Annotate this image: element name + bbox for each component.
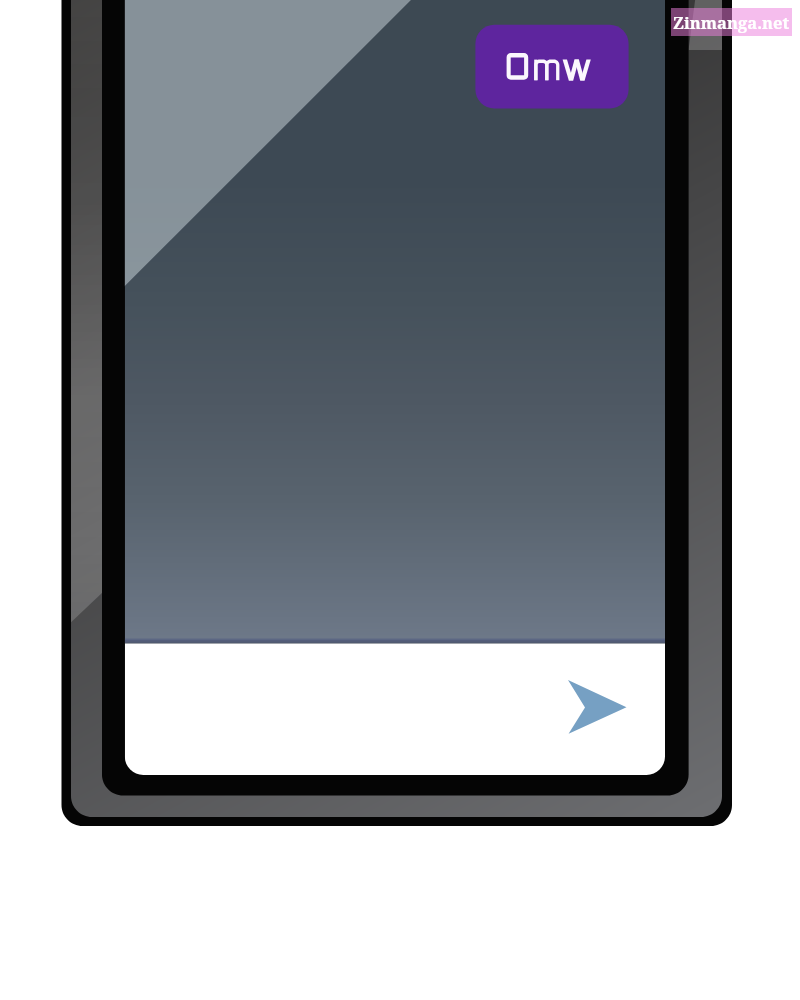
button[interactable]: Omw message: [475, 25, 629, 109]
button[interactable]: Send: [560, 672, 634, 742]
button[interactable]: Message input: [125, 644, 560, 775]
staticText: Zinmanga.net: [673, 11, 790, 33]
